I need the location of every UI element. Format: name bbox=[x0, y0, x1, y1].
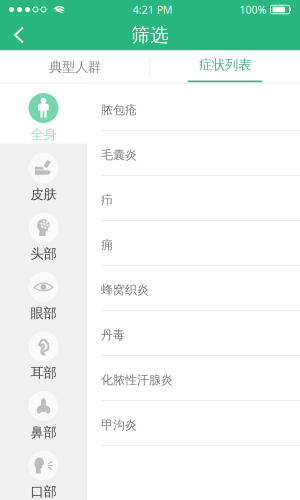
staticText: 头部 bbox=[30, 245, 56, 262]
button[interactable]: 典型人群 bbox=[0, 50, 150, 83]
button[interactable]: Back bbox=[0, 19, 40, 50]
staticText: 蜂窝织炎 bbox=[101, 283, 149, 297]
button[interactable]: 症状列表 bbox=[150, 50, 300, 83]
staticText: 甲沟炎 bbox=[101, 418, 137, 432]
button[interactable]: 鼻部 bbox=[0, 381, 87, 441]
staticText: 脓包疮 bbox=[101, 103, 137, 117]
staticText: 症状列表 bbox=[199, 56, 251, 73]
staticText: 痈 bbox=[101, 238, 113, 252]
button[interactable]: 疖 bbox=[87, 176, 300, 221]
button[interactable]: 蜂窝织炎 bbox=[87, 266, 300, 311]
button[interactable]: 甲沟炎 bbox=[87, 401, 300, 446]
staticText: 皮肤 bbox=[30, 186, 56, 202]
button[interactable]: 耳部 bbox=[0, 322, 87, 381]
button[interactable]: 化脓性汗腺炎 bbox=[87, 356, 300, 401]
staticText: 化脓性汗腺炎 bbox=[101, 373, 173, 387]
staticText: 鼻部 bbox=[30, 424, 56, 440]
button[interactable]: 口部 bbox=[0, 441, 87, 500]
staticText: 口部 bbox=[30, 483, 56, 500]
staticText: 典型人群 bbox=[49, 59, 101, 75]
staticText: 丹毒 bbox=[101, 328, 125, 342]
staticText: 疖 bbox=[101, 193, 113, 207]
button[interactable]: 丹毒 bbox=[87, 311, 300, 356]
button[interactable]: 皮肤 bbox=[0, 143, 87, 203]
staticText: 耳部 bbox=[30, 364, 56, 381]
staticText: 全身 bbox=[30, 126, 56, 142]
button[interactable]: 毛囊炎 bbox=[87, 131, 300, 176]
staticText: 100% bbox=[240, 2, 267, 17]
button[interactable]: 眼部 bbox=[0, 262, 87, 322]
button[interactable]: 脓包疮 bbox=[87, 86, 300, 131]
staticText: 筛选 bbox=[131, 23, 169, 46]
staticText: 毛囊炎 bbox=[101, 148, 137, 162]
staticText: 眼部 bbox=[30, 305, 56, 321]
button[interactable]: 头部 bbox=[0, 203, 87, 262]
button[interactable]: 痈 bbox=[87, 221, 300, 266]
button[interactable]: 全身 bbox=[0, 83, 87, 143]
staticText: 4:21 PM bbox=[133, 2, 173, 17]
